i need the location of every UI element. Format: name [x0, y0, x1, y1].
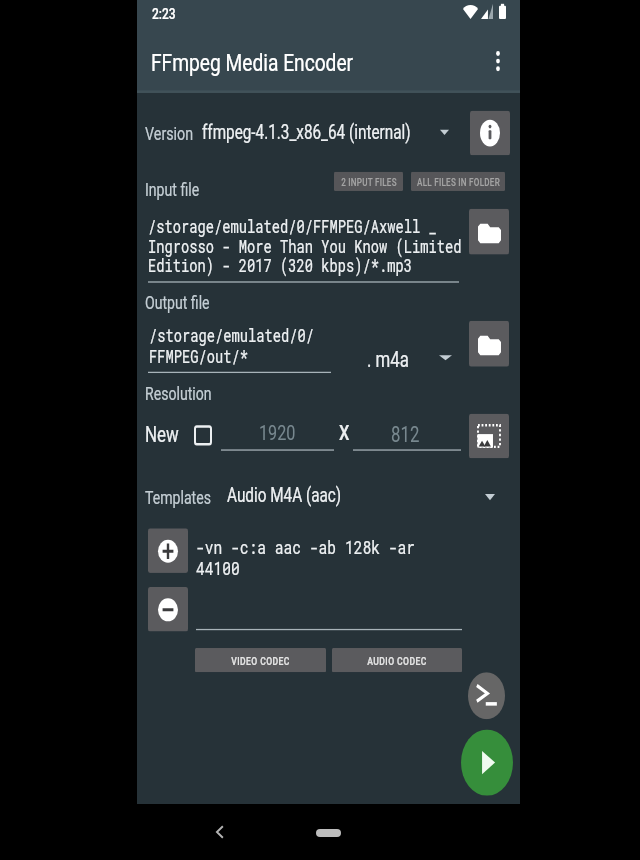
- button[interactable]: Home: [316, 829, 341, 837]
- button[interactable]: Start encoding: [461, 729, 513, 796]
- button[interactable]: Add command: [148, 528, 188, 573]
- staticText: /storage/emulated/0/FFMPEG/Axwell _ Ingr…: [148, 215, 462, 278]
- staticText: VIDEO CODEC: [231, 654, 290, 667]
- button[interactable]: Browse input file: [469, 209, 509, 255]
- button[interactable]: Remove command: [148, 587, 188, 631]
- staticText: New: [145, 421, 179, 447]
- button[interactable]: Expand dropdown: [433, 120, 456, 145]
- staticText: 2:23: [152, 5, 176, 23]
- button[interactable]: Expand dropdown: [432, 345, 459, 370]
- button[interactable]: ALL FILES IN FOLDER: [411, 172, 505, 191]
- staticText: -vn -c:a aac -ab 128k -ar 44100: [196, 535, 415, 580]
- button[interactable]: Pick resolution: [469, 414, 509, 458]
- button[interactable]: Use new resolution: [188, 418, 218, 453]
- button[interactable]: 2 INPUT FILES: [334, 172, 403, 191]
- staticText: 812: [391, 421, 420, 447]
- button[interactable]: VIDEO CODEC: [195, 648, 326, 672]
- staticText: Templates: [145, 488, 211, 509]
- staticText: X: [339, 421, 350, 446]
- staticText: Input file: [145, 179, 200, 201]
- staticText: Resolution: [145, 383, 212, 405]
- staticText: Audio M4A (aac): [227, 484, 342, 507]
- button[interactable]: Browse output folder: [469, 321, 509, 367]
- button[interactable]: More options: [485, 48, 511, 74]
- staticText: Output file: [145, 293, 210, 314]
- button[interactable]: Back: [209, 821, 231, 843]
- staticText: ffmpeg-4.1.3_x86_64 (internal): [202, 121, 411, 144]
- staticText: . m4a: [367, 346, 409, 372]
- staticText: 1920: [259, 421, 296, 446]
- button[interactable]: Open terminal: [468, 672, 505, 719]
- staticText: FFmpeg Media Encoder: [151, 48, 354, 78]
- staticText: /storage/emulated/0/ FFMPEG/out/*: [149, 325, 315, 368]
- staticText: AUDIO CODEC: [367, 654, 427, 667]
- button[interactable]: File info: [470, 111, 510, 155]
- button[interactable]: AUDIO CODEC: [332, 648, 462, 672]
- staticText: Version: [145, 123, 194, 145]
- staticText: 2 INPUT FILES: [341, 176, 397, 187]
- button[interactable]: Expand dropdown: [478, 484, 502, 510]
- staticText: ALL FILES IN FOLDER: [417, 176, 500, 187]
